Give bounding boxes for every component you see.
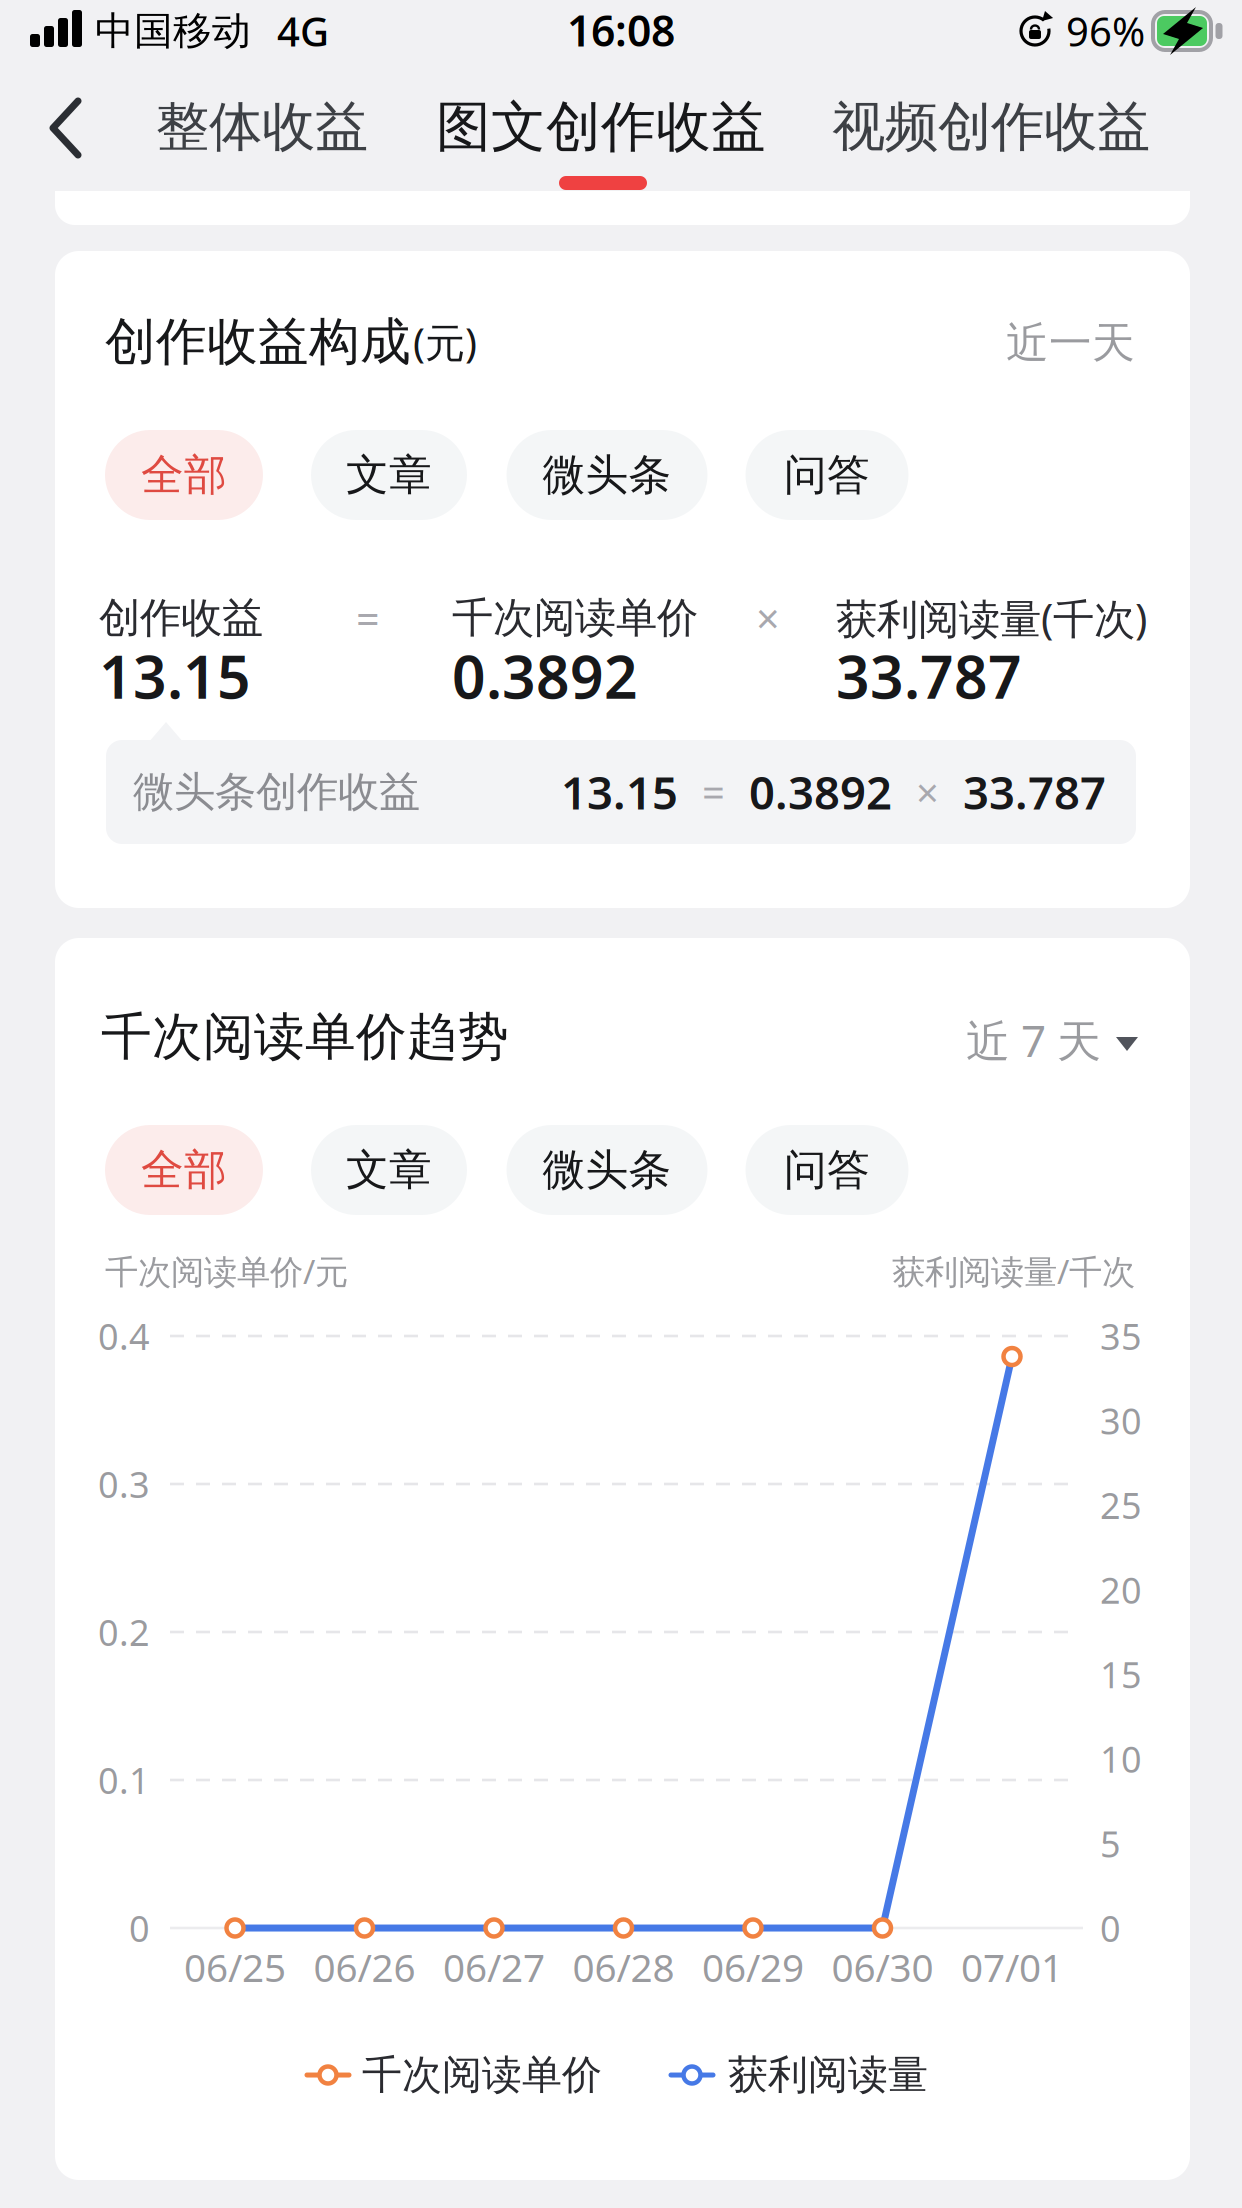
staticText: 创作收益构成 bbox=[105, 311, 411, 373]
staticText: (元) bbox=[413, 315, 477, 368]
staticText: 近 7 天 bbox=[966, 1011, 1101, 1069]
staticText: 微头条 bbox=[542, 1144, 671, 1196]
staticText: 获利阅读量(千次) bbox=[836, 591, 1147, 645]
staticText: 33.787 bbox=[836, 637, 1022, 715]
staticText: 0.3892 bbox=[749, 762, 892, 822]
staticText: 千次阅读单价/元 bbox=[105, 1249, 348, 1293]
staticText: 0.1 bbox=[98, 1756, 150, 1804]
staticText: 0.3 bbox=[98, 1460, 150, 1508]
staticText: = bbox=[702, 765, 725, 818]
staticText: = bbox=[356, 591, 380, 645]
staticText: 20 bbox=[1100, 1566, 1142, 1614]
staticText: 5 bbox=[1100, 1819, 1121, 1867]
staticText: 30 bbox=[1100, 1397, 1142, 1444]
staticText: 0 bbox=[129, 1904, 150, 1952]
staticText: 0.3892 bbox=[452, 637, 638, 715]
staticText: 微头条创作收益 bbox=[133, 767, 420, 817]
staticText: 千次阅读单价 bbox=[452, 593, 698, 643]
staticText: 获利阅读量 bbox=[728, 2050, 928, 2099]
staticText: 06/30 bbox=[831, 1941, 933, 1993]
staticText: 微头条 bbox=[542, 449, 671, 501]
staticText: 13.15 bbox=[561, 762, 678, 822]
staticText: 0 bbox=[1100, 1904, 1121, 1952]
staticText: 33.787 bbox=[963, 762, 1106, 822]
staticText: 问答 bbox=[784, 449, 870, 501]
staticText: 文章 bbox=[346, 449, 432, 501]
staticText: 06/26 bbox=[313, 1941, 415, 1993]
staticText: 创作收益 bbox=[99, 593, 263, 643]
staticText: 96% bbox=[1066, 4, 1145, 57]
staticText: 06/28 bbox=[572, 1941, 674, 1993]
staticText: × bbox=[916, 765, 939, 818]
staticText: 千次阅读单价 bbox=[362, 2050, 602, 2099]
staticText: 图文创作收益 bbox=[436, 93, 766, 160]
staticText: 06/29 bbox=[702, 1941, 804, 1993]
staticText: 近一天 bbox=[1006, 317, 1135, 369]
staticText: 问答 bbox=[784, 1144, 870, 1196]
staticText: 07/01 bbox=[961, 1941, 1063, 1993]
staticText: 文章 bbox=[346, 1144, 432, 1196]
staticText: 视频创作收益 bbox=[832, 94, 1150, 160]
staticText: 10 bbox=[1100, 1735, 1142, 1783]
staticText: 25 bbox=[1100, 1481, 1142, 1529]
staticText: 06/27 bbox=[443, 1941, 545, 1993]
staticText: 13.15 bbox=[99, 637, 251, 715]
staticText: 全部 bbox=[141, 1144, 227, 1196]
staticText: 全部 bbox=[141, 449, 227, 501]
staticText: × bbox=[756, 591, 780, 645]
staticText: 0.2 bbox=[98, 1608, 150, 1656]
staticText: 15 bbox=[1100, 1650, 1142, 1698]
staticText: 0.4 bbox=[98, 1312, 150, 1360]
staticText: 获利阅读量/千次 bbox=[892, 1249, 1135, 1293]
staticText: 06/25 bbox=[184, 1941, 286, 1993]
staticText: 千次阅读单价趋势 bbox=[101, 1006, 509, 1068]
staticText: 16:08 bbox=[567, 2, 675, 58]
staticText: 整体收益 bbox=[156, 94, 368, 160]
staticText: 4G bbox=[277, 4, 329, 57]
staticText: 35 bbox=[1100, 1312, 1142, 1360]
staticText: 中国移动 bbox=[95, 7, 251, 55]
